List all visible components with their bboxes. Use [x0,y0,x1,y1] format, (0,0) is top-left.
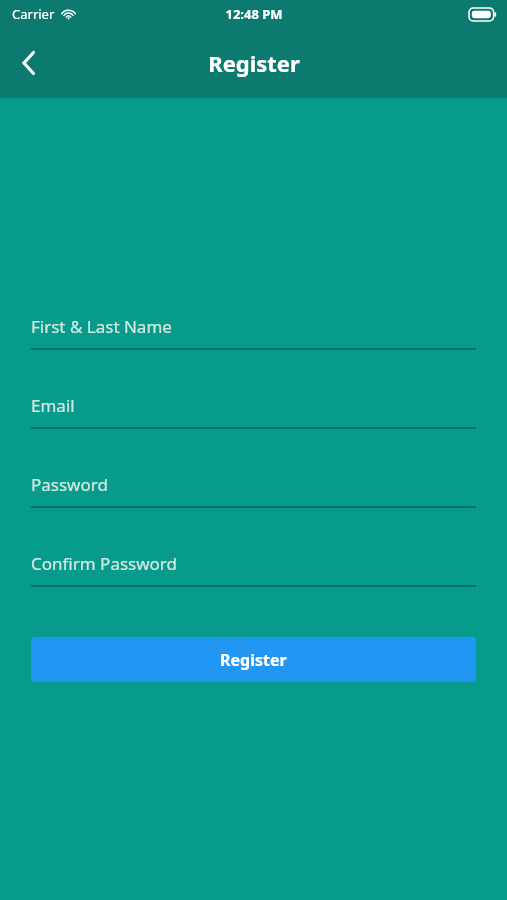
staticText: Register [220,649,287,671]
button[interactable]: Password [31,462,476,506]
staticText: Email [31,394,75,417]
button[interactable]: Confirm Password [31,541,476,585]
staticText: Carrier [12,5,55,23]
button[interactable]: Back [6,40,52,86]
staticText: Confirm Password [31,552,177,575]
staticText: Register [208,48,300,78]
button[interactable]: Email [31,383,476,427]
button[interactable]: Register [31,637,476,682]
staticText: First & Last Name [31,315,172,338]
staticText: 12:48 PM [225,5,283,23]
staticText: Password [31,473,108,496]
button[interactable]: First & Last Name [31,304,476,348]
